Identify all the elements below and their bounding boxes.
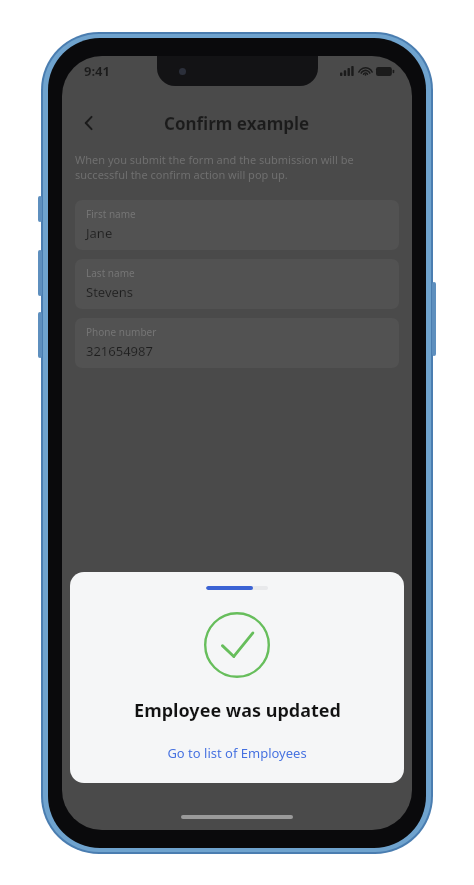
button[interactable]: First name xyxy=(75,200,399,250)
staticText: Jane xyxy=(86,224,113,242)
button[interactable]: Back xyxy=(72,106,106,140)
staticText: Stevens xyxy=(86,283,134,301)
staticText: Confirm example xyxy=(164,112,310,135)
staticText: Phone number xyxy=(86,325,157,339)
staticText: Employee was updated xyxy=(134,698,341,723)
button[interactable]: Go to list of Employees xyxy=(155,739,319,767)
staticText: Last name xyxy=(86,266,135,280)
staticText: First name xyxy=(86,207,136,221)
staticText: When you submit the form and the submiss… xyxy=(75,152,399,182)
button[interactable]: Last name xyxy=(75,259,399,309)
button[interactable]: Phone number xyxy=(75,318,399,368)
staticText: 9:41 xyxy=(84,62,110,80)
staticText: 321654987 xyxy=(86,342,153,360)
staticText: Go to list of Employees xyxy=(167,744,307,762)
